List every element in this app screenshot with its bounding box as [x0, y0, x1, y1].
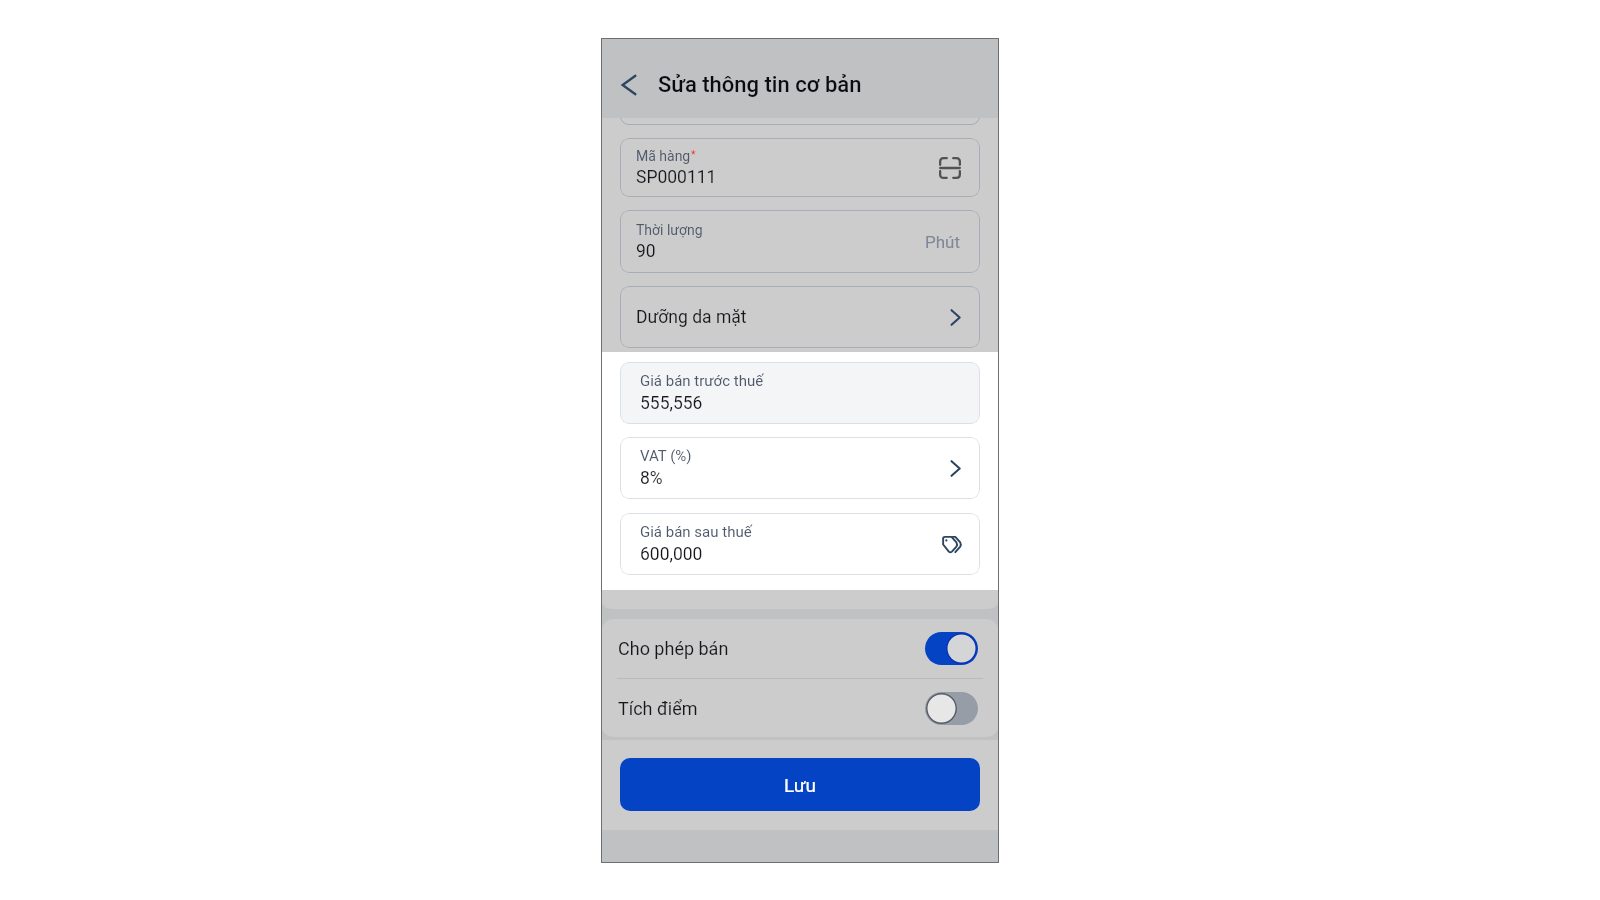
- button[interactable]: Giá bán sau thuế: [620, 513, 980, 575]
- staticText: Tích điểm: [618, 698, 925, 719]
- staticText: Dưỡng da mặt: [636, 307, 942, 328]
- button[interactable]: Tích điểm: [601, 679, 999, 737]
- button[interactable]: Dưỡng da mặt: [620, 286, 980, 348]
- button[interactable]: Mã hàng: [620, 138, 980, 197]
- staticText: 8%: [640, 468, 663, 489]
- staticText: Cho phép bán: [618, 638, 925, 659]
- button[interactable]: Back: [611, 67, 647, 103]
- staticText: Sửa thông tin cơ bản: [658, 72, 862, 98]
- staticText: SP000111: [636, 167, 717, 188]
- staticText: Lưu: [784, 774, 817, 796]
- staticText: Phút: [925, 232, 961, 252]
- staticText: VAT (%): [640, 447, 692, 465]
- staticText: Giá bán sau thuế: [640, 523, 752, 541]
- button[interactable]: Price tag: [936, 529, 966, 559]
- staticText: 90: [636, 241, 656, 262]
- staticText: Mã hàng: [636, 148, 691, 164]
- staticText: 600,000: [640, 544, 703, 565]
- button[interactable]: Lưu: [620, 758, 980, 811]
- button[interactable]: Cho phép bán: [601, 619, 999, 678]
- staticText: Thời lượng: [636, 222, 703, 238]
- button[interactable]: Scan barcode: [935, 153, 965, 183]
- button[interactable]: VAT (%): [620, 437, 980, 499]
- button[interactable]: Thời lượng: [620, 210, 980, 273]
- button[interactable]: Giá bán trước thuế: [620, 362, 980, 424]
- staticText: *: [691, 148, 696, 160]
- staticText: 555,556: [640, 393, 703, 414]
- staticText: Giá bán trước thuế: [640, 372, 764, 390]
